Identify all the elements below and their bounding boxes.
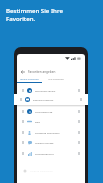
- button[interactable]: Zahlung erfassen: [14, 94, 88, 105]
- staticText: Weitere Funktionen: [30, 169, 53, 172]
- staticText: Telefon/Vorlage: [35, 141, 54, 144]
- staticText: Finanzübersicht: [35, 152, 54, 155]
- button[interactable]: Zurück: [17, 67, 28, 76]
- staticText: Meine Favoriten: [20, 77, 39, 80]
- staticText: Favoriten.: [6, 14, 36, 22]
- button[interactable]: Alle Favoriten: [42, 74, 70, 82]
- button[interactable]: Pendente Zahlungen: [17, 127, 85, 138]
- staticText: Bestimmen Sie Ihre: [6, 6, 63, 14]
- button[interactable]: Finanzübersicht: [17, 148, 85, 159]
- button[interactable]: Rechnung zahlen: [17, 85, 85, 96]
- staticText: Alle Favoriten: [48, 77, 64, 80]
- staticText: Pendente Zahlungen: [35, 131, 60, 134]
- staticText: Zahlung erfassen: [33, 98, 54, 101]
- button[interactable]: Telefon/Vorlage: [17, 137, 85, 148]
- button[interactable]: Meine Favoriten: [17, 74, 42, 82]
- staticText: Rechnung zahlen: [35, 89, 56, 92]
- staticText: eBill: [35, 120, 40, 123]
- button[interactable]: Kontoübertrag: [17, 106, 85, 117]
- staticText: Kontoübertrag: [35, 110, 53, 113]
- staticText: Favoriten angeben: [28, 70, 56, 74]
- button[interactable]: eBill: [17, 116, 85, 127]
- button[interactable]: Weitere Funktionen: [17, 166, 85, 175]
